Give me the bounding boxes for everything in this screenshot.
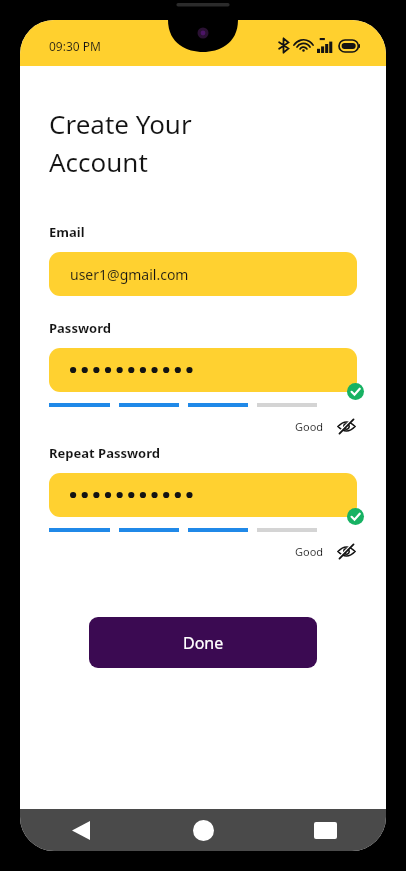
staticText: Account <box>49 144 148 179</box>
staticText: Email <box>49 223 85 241</box>
staticText: Password <box>49 319 111 337</box>
staticText: Good <box>295 419 324 434</box>
button[interactable]: Back <box>20 809 142 851</box>
staticText: Create Your <box>49 106 192 141</box>
button[interactable] <box>49 473 357 517</box>
staticText: 09:30 PM <box>49 38 101 54</box>
button[interactable]: Home <box>142 809 264 851</box>
button[interactable]: Hide password <box>335 540 357 562</box>
button[interactable]: user1@gmail.com <box>49 252 357 296</box>
button[interactable]: Recent apps <box>264 809 386 851</box>
staticText: Repeat Password <box>49 444 161 462</box>
button[interactable]: Done <box>89 617 317 668</box>
button[interactable] <box>49 348 357 392</box>
staticText: Good <box>295 544 324 559</box>
staticText: Done <box>183 632 224 654</box>
button[interactable]: Hide password <box>335 415 357 437</box>
staticText: user1@gmail.com <box>70 265 189 284</box>
